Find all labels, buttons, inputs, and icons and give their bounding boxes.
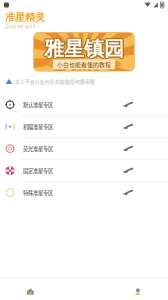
staticText: 准星精灵	[5, 11, 45, 24]
button[interactable]: 首页	[15, 280, 46, 297]
staticText: 雅星镇园	[44, 37, 124, 62]
button[interactable]: 特殊准星专区	[0, 182, 168, 203]
staticText: 本人不会以任何形式收取任何费用喔	[15, 78, 95, 85]
button[interactable]: 机瞄准星专区	[0, 116, 168, 138]
button[interactable]: 默认准星专区	[0, 94, 168, 116]
staticText: 雅星镇园	[44, 35, 124, 60]
staticText: Quasi star spirit	[5, 24, 35, 29]
staticText: 机瞄准星专区	[23, 123, 53, 130]
button[interactable]: 荧光准星专区	[0, 138, 168, 160]
staticText: 雅星镇园	[45, 35, 125, 61]
staticText: 荧光准星专区	[23, 145, 53, 152]
staticText: 雅星镇园	[43, 35, 123, 61]
staticText: 雅星镇园	[43, 36, 123, 61]
staticText: 特殊准星专区	[23, 189, 53, 196]
staticText: 雅星镇园	[45, 36, 125, 61]
staticText: 雅星镇园	[44, 36, 124, 61]
staticText: 默认准星专区	[23, 101, 53, 108]
button[interactable]: 我的	[123, 280, 153, 297]
button[interactable]: 固定准星专区	[0, 160, 168, 182]
staticText: 固定准星专区	[23, 167, 53, 174]
staticText: 雅星镇园	[43, 37, 123, 62]
staticText: 小白也能看懂的教程	[57, 60, 111, 69]
staticText: 雅星镇园	[45, 37, 125, 62]
